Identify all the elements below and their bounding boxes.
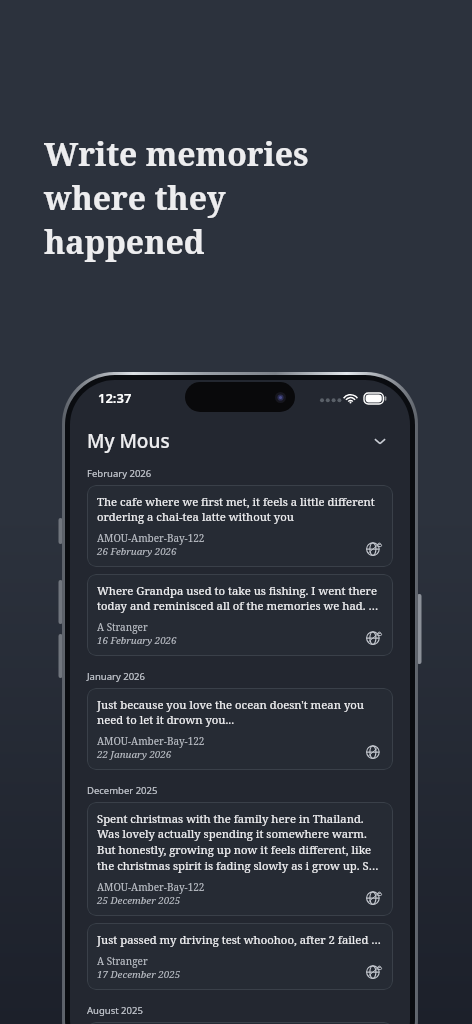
staticText: 25 December 2025 xyxy=(97,894,181,907)
staticText: January 2026 xyxy=(87,670,145,683)
other: Private memory xyxy=(363,538,383,558)
staticText: A Stranger xyxy=(97,954,148,968)
button[interactable]: The cafe where we first met, it feels a … xyxy=(87,485,393,567)
staticText: 17 December 2025 xyxy=(97,968,181,981)
button[interactable]: Spent christmas with the family here in … xyxy=(87,802,393,916)
button[interactable]: Seagulls in south of france, wish I were… xyxy=(87,1022,393,1024)
button[interactable]: Where Grandpa used to take us fishing. I… xyxy=(87,574,393,656)
staticText: December 2025 xyxy=(87,784,158,797)
staticText: AMOU-Amber-Bay-122 xyxy=(97,880,205,894)
staticText: happened xyxy=(44,220,205,264)
staticText: Just because you love the ocean doesn't … xyxy=(97,697,383,727)
other: Private memory xyxy=(363,887,383,907)
staticText: Spent christmas with the family here in … xyxy=(97,811,383,873)
staticText: Where Grandpa used to take us fishing. I… xyxy=(97,583,383,613)
button[interactable]: Just passed my driving test whoohoo, aft… xyxy=(87,923,393,990)
staticText: 16 February 2026 xyxy=(97,634,177,647)
staticText: AMOU-Amber-Bay-122 xyxy=(97,734,205,748)
staticText: Just passed my driving test whoohoo, aft… xyxy=(97,932,383,947)
staticText: 26 February 2026 xyxy=(97,545,177,558)
other: Expand xyxy=(367,428,393,454)
other: Private memory xyxy=(363,961,383,981)
staticText: where they xyxy=(44,176,226,220)
staticText: AMOU-Amber-Bay-122 xyxy=(97,531,205,545)
other: Public memory xyxy=(363,741,383,761)
button[interactable]: Just because you love the ocean doesn't … xyxy=(87,688,393,770)
staticText: My Mous xyxy=(87,428,170,454)
staticText: 12:37 xyxy=(98,389,132,407)
staticText: A Stranger xyxy=(97,620,148,634)
other: Private memory xyxy=(363,627,383,647)
staticText: February 2026 xyxy=(87,467,152,480)
staticText: Write memories xyxy=(44,132,309,176)
staticText: August 2025 xyxy=(87,1004,143,1017)
staticText: 22 January 2026 xyxy=(97,748,172,761)
staticText: The cafe where we first met, it feels a … xyxy=(97,494,383,524)
button[interactable]: My Mous xyxy=(70,426,410,460)
